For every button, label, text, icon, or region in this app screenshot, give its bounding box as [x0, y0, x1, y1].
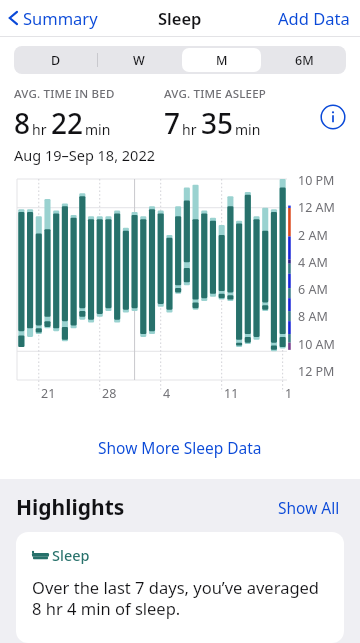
staticText: 8 [14, 104, 31, 142]
staticText: hr [182, 120, 197, 139]
staticText: Over the last 7 days, you’ve averaged 8 … [32, 576, 328, 620]
button[interactable]: D [14, 46, 97, 74]
staticText: M [216, 52, 228, 69]
staticText: 7 [164, 104, 181, 142]
button[interactable]: 6M [263, 46, 346, 74]
staticText: Show More Sleep Data [98, 437, 262, 458]
staticText: hr [32, 120, 47, 139]
staticText: 10 PM [298, 172, 335, 189]
staticText: 12 AM [298, 199, 335, 216]
staticText: 35 [201, 104, 234, 142]
staticText: Aug 19–Sep 18, 2022 [14, 145, 155, 165]
button[interactable]: Sleep [16, 532, 344, 643]
staticText: 6 AM [298, 281, 328, 298]
staticText: AVG. TIME ASLEEP [164, 86, 267, 102]
staticText: 4 [163, 385, 171, 402]
staticText: Highlights [16, 493, 125, 522]
staticText: 6M [295, 52, 314, 69]
staticText: Sleep [52, 545, 90, 565]
staticText: 21 [41, 385, 56, 402]
button[interactable]: About sleep data [320, 104, 346, 130]
staticText: 22 [51, 104, 84, 142]
staticText: Sleep [158, 7, 202, 29]
button[interactable]: Show More Sleep Data [0, 431, 360, 464]
staticText: 2 AM [298, 227, 328, 244]
staticText: Show All [278, 497, 340, 518]
staticText: D [51, 52, 61, 69]
staticText: 11 [224, 385, 239, 402]
staticText: 8 AM [298, 308, 328, 325]
staticText: 12 PM [298, 363, 335, 380]
staticText: 4 AM [298, 254, 328, 271]
staticText: W [133, 52, 145, 69]
button[interactable]: W [97, 46, 180, 74]
staticText: AVG. TIME IN BED [14, 86, 115, 102]
button[interactable]: Show All [274, 493, 344, 522]
staticText: 1 [285, 385, 293, 402]
staticText: min [85, 120, 111, 139]
button[interactable]: Add Data [268, 3, 360, 33]
staticText: Add Data [278, 7, 350, 29]
button[interactable]: M [180, 46, 263, 74]
staticText: min [235, 120, 261, 139]
staticText: 10 AM [298, 336, 335, 353]
staticText: Summary [23, 7, 98, 29]
staticText: 28 [102, 385, 117, 402]
button[interactable]: Summary [0, 3, 106, 33]
